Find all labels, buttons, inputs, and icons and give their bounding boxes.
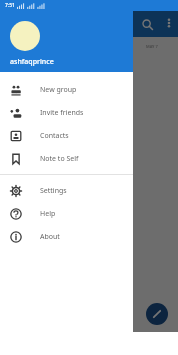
button[interactable]: New group [0,78,133,101]
staticText: Settings [40,186,67,196]
button[interactable]: Invite friends [0,101,133,124]
button[interactable]: Contacts [0,124,133,147]
staticText: Help [40,209,56,219]
button[interactable]: Search [137,14,157,34]
button[interactable]: Compose message [146,303,168,325]
staticText: Note to Self [40,154,79,164]
staticText: MAY 7 [146,44,158,49]
button[interactable]: Help [0,202,133,225]
staticText: Invite friends [40,108,84,118]
staticText: 7:51 [5,2,15,9]
button[interactable]: Note to Self [0,147,133,170]
staticText: ashfaqprince [10,57,54,67]
button[interactable]: Profile photo [10,21,40,51]
button[interactable]: About [0,225,133,248]
button[interactable]: Settings [0,179,133,202]
staticText: About [40,232,60,242]
staticText: New group [40,85,77,95]
staticText: Contacts [40,131,69,141]
button[interactable]: More options [160,14,178,32]
